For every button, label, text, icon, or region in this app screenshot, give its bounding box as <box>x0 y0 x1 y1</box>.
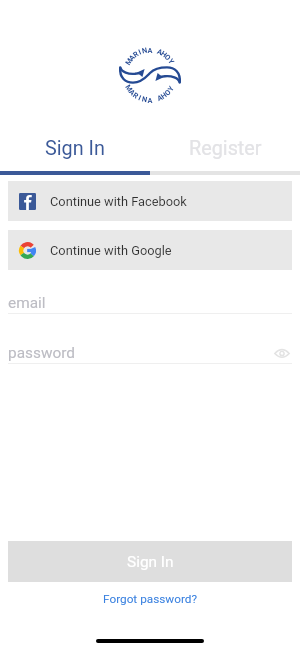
staticText: email <box>8 294 46 312</box>
button[interactable]: Register <box>150 125 300 171</box>
button[interactable]: Sign In <box>0 125 150 171</box>
button[interactable]: Show password <box>272 343 292 363</box>
button[interactable]: Continue with Google <box>8 230 292 270</box>
staticText: Sign In <box>127 553 174 571</box>
staticText: Continue with Facebook <box>50 194 187 209</box>
button[interactable]: Sign In <box>8 541 292 582</box>
button[interactable]: Continue with Facebook <box>8 181 292 221</box>
staticText: Register <box>189 137 262 160</box>
staticText: Forgot password? <box>103 592 198 606</box>
staticText: Continue with Google <box>50 243 172 258</box>
button[interactable]: Forgot password? <box>95 589 206 609</box>
staticText: password <box>8 344 75 362</box>
staticText: Sign In <box>45 137 105 160</box>
